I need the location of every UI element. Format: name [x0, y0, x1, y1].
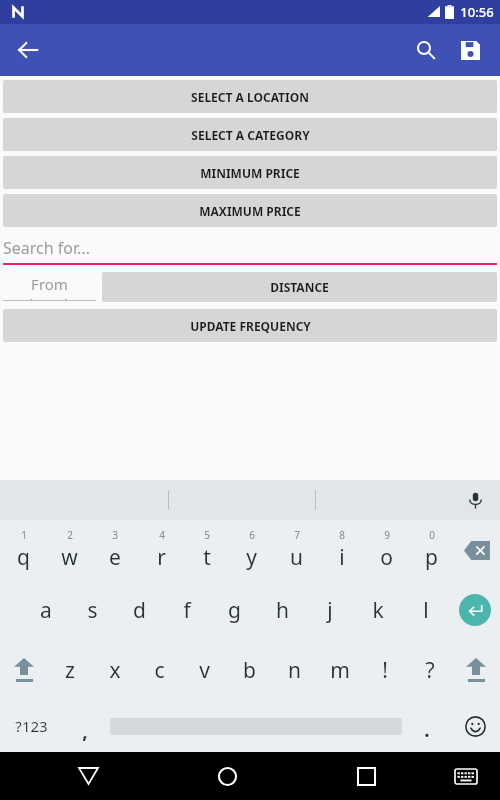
button[interactable]: l [402, 580, 450, 640]
button[interactable]: 5 [184, 520, 229, 580]
staticText: z [65, 656, 75, 685]
button[interactable]: n [272, 640, 317, 700]
button[interactable]: ?123 [0, 700, 62, 752]
button[interactable]: 0 [409, 520, 454, 580]
button[interactable]: ? [407, 640, 452, 700]
staticText: 8 [339, 528, 345, 542]
staticText: f [183, 596, 191, 625]
staticText: 6 [249, 528, 255, 542]
button[interactable]: Search for... [3, 233, 497, 265]
staticText: a [40, 596, 52, 625]
staticText: g [228, 596, 241, 625]
button[interactable]: 9 [364, 520, 409, 580]
button[interactable]: Home [158, 752, 297, 800]
staticText: 4 [159, 528, 165, 542]
staticText: k [372, 596, 384, 625]
button[interactable]: v [182, 640, 227, 700]
staticText: u [290, 543, 303, 572]
button[interactable]: s [69, 580, 116, 640]
staticText: UPDATE FREQUENCY [190, 318, 311, 334]
staticText: j [327, 596, 333, 625]
staticText: 5 [204, 528, 210, 542]
button[interactable]: MAXIMUM PRICE [3, 194, 497, 227]
button[interactable]: Switch keyboard [436, 752, 496, 800]
staticText: 3 [112, 528, 118, 542]
button[interactable]: Recents [297, 752, 436, 800]
staticText: p [425, 543, 438, 572]
button[interactable]: h [258, 580, 306, 640]
staticText: SELECT A LOCATION [191, 89, 309, 105]
button[interactable]: 6 [229, 520, 274, 580]
button[interactable]: Back [6, 28, 50, 72]
staticText: i [339, 543, 345, 572]
button[interactable]: . [404, 700, 450, 752]
staticText: ! [382, 656, 388, 685]
button[interactable]: Back [18, 752, 158, 800]
button[interactable]: Enter [450, 580, 500, 640]
button[interactable]: UPDATE FREQUENCY [3, 309, 497, 342]
staticText: s [87, 596, 98, 625]
button[interactable]: k [354, 580, 402, 640]
staticText: DISTANCE [270, 279, 329, 295]
button[interactable]: Space [108, 700, 404, 752]
button[interactable]: 3 [92, 520, 138, 580]
staticText: o [380, 543, 393, 572]
button[interactable]: Shift [0, 640, 48, 700]
button[interactable]: d [116, 580, 163, 640]
staticText: SELECT A CATEGORY [191, 127, 310, 143]
button[interactable]: , [62, 700, 108, 752]
staticText: MAXIMUM PRICE [199, 203, 301, 219]
staticText: q [17, 543, 30, 572]
staticText: 9 [384, 528, 390, 542]
button[interactable]: From zipcode [3, 274, 96, 301]
button[interactable]: f [163, 580, 210, 640]
button[interactable]: Emoji [450, 700, 500, 752]
staticText: Search for... [3, 237, 90, 259]
button[interactable]: MINIMUM PRICE [3, 156, 497, 189]
staticText: 2 [67, 528, 73, 542]
button[interactable]: SELECT A CATEGORY [3, 118, 497, 151]
staticText: From zipcode [3, 274, 96, 300]
staticText: y [246, 543, 257, 572]
button[interactable]: g [210, 580, 258, 640]
button[interactable]: j [306, 580, 354, 640]
button[interactable]: 8 [319, 520, 364, 580]
staticText: m [330, 656, 350, 685]
button[interactable]: m [317, 640, 362, 700]
staticText: ? [425, 656, 435, 685]
button[interactable]: DISTANCE [102, 272, 497, 302]
staticText: b [243, 656, 256, 685]
button[interactable]: Backspace [454, 520, 500, 580]
button[interactable]: 7 [274, 520, 319, 580]
staticText: . [424, 717, 430, 743]
button[interactable]: z [48, 640, 92, 700]
staticText: c [154, 656, 165, 685]
staticText: d [133, 596, 146, 625]
staticText: ?123 [15, 716, 48, 736]
staticText: MINIMUM PRICE [200, 165, 300, 181]
button[interactable]: b [227, 640, 272, 700]
staticText: h [276, 596, 289, 625]
staticText: 10:56 [460, 3, 494, 21]
button[interactable]: Search [404, 28, 448, 72]
staticText: x [109, 656, 121, 685]
button[interactable]: ! [362, 640, 407, 700]
staticText: 7 [294, 528, 300, 542]
staticText: v [199, 656, 210, 685]
button[interactable]: x [92, 640, 137, 700]
button[interactable]: 1 [0, 520, 46, 580]
staticText: n [288, 656, 301, 685]
button[interactable]: SELECT A LOCATION [3, 80, 497, 113]
staticText: r [157, 543, 166, 572]
button[interactable]: c [137, 640, 182, 700]
staticText: 0 [429, 528, 435, 542]
staticText: 1 [21, 528, 27, 542]
staticText: l [423, 596, 429, 625]
button[interactable]: Shift [452, 640, 500, 700]
staticText: e [109, 543, 121, 572]
button[interactable]: 2 [46, 520, 92, 580]
button[interactable]: Voice input [460, 485, 490, 515]
button[interactable]: 4 [138, 520, 184, 580]
button[interactable]: a [22, 580, 69, 640]
button[interactable]: Save [448, 28, 492, 72]
